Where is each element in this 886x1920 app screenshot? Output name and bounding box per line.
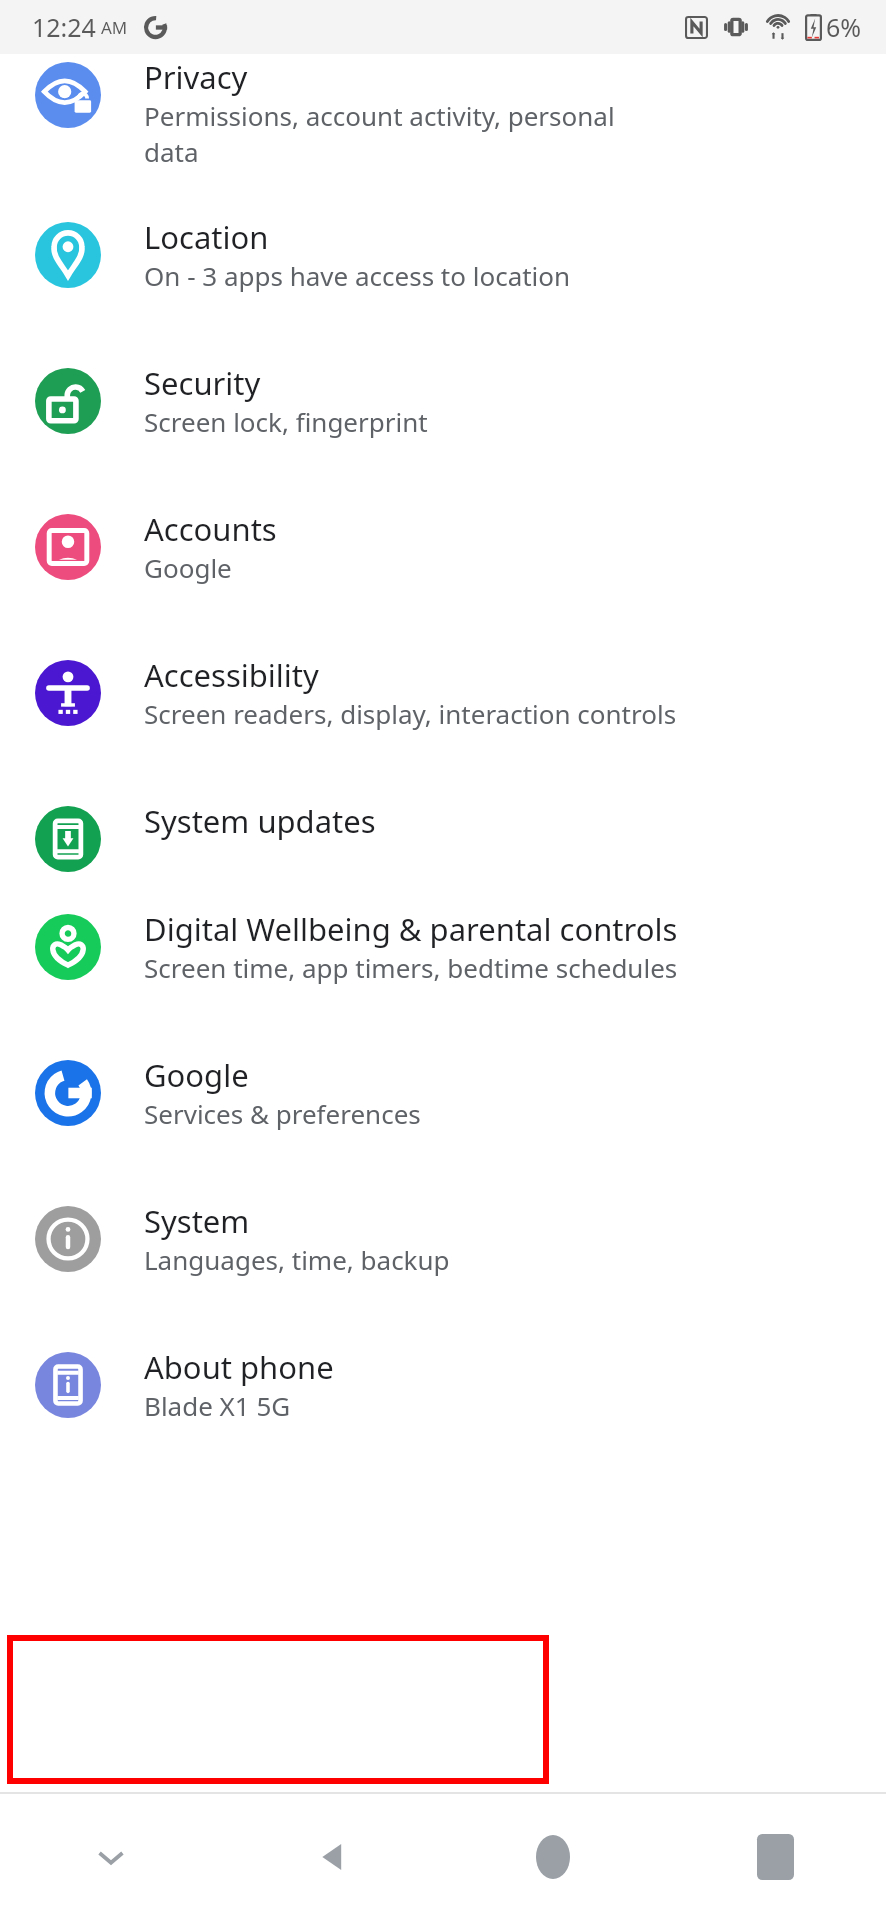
- button[interactable]: Hide keyboard: [0, 1794, 221, 1920]
- button[interactable]: Security: [0, 344, 886, 490]
- staticText: Accessibility: [144, 654, 319, 696]
- button[interactable]: Back: [221, 1794, 442, 1920]
- button[interactable]: Accounts: [0, 490, 886, 636]
- staticText: Google: [144, 1054, 249, 1096]
- staticText: Accounts: [144, 508, 277, 550]
- staticText: 12:24: [32, 10, 96, 44]
- staticText: Services & preferences: [144, 1096, 421, 1131]
- staticText: Screen lock, fingerprint: [144, 404, 428, 439]
- button[interactable]: Home: [442, 1794, 664, 1920]
- staticText: Digital Wellbeing & parental controls: [144, 908, 678, 950]
- staticText: System: [144, 1200, 250, 1242]
- button[interactable]: Google: [0, 1036, 886, 1182]
- staticText: Permissions, account activity, personal …: [144, 98, 615, 170]
- staticText: Screen readers, display, interaction con…: [144, 696, 677, 731]
- button[interactable]: Digital Wellbeing & parental controls: [0, 890, 886, 1036]
- staticText: Privacy: [144, 56, 248, 98]
- button[interactable]: Privacy: [0, 28, 886, 198]
- staticText: Screen time, app timers, bedtime schedul…: [144, 950, 678, 985]
- staticText: About phone: [144, 1346, 334, 1388]
- button[interactable]: Recent apps: [664, 1794, 886, 1920]
- staticText: AM: [101, 16, 128, 39]
- button[interactable]: Accessibility: [0, 636, 886, 782]
- staticText: 6%: [826, 10, 862, 44]
- button[interactable]: System: [0, 1182, 886, 1328]
- staticText: On - 3 apps have access to location: [144, 258, 571, 293]
- button[interactable]: About phone: [0, 1328, 886, 1474]
- button[interactable]: System updates: [0, 782, 886, 890]
- staticText: Location: [144, 216, 269, 258]
- staticText: Security: [144, 362, 261, 404]
- staticText: Google: [144, 550, 232, 585]
- button[interactable]: Location: [0, 198, 886, 344]
- staticText: Blade X1 5G: [144, 1388, 291, 1423]
- staticText: Languages, time, backup: [144, 1242, 450, 1277]
- staticText: System updates: [144, 800, 376, 842]
